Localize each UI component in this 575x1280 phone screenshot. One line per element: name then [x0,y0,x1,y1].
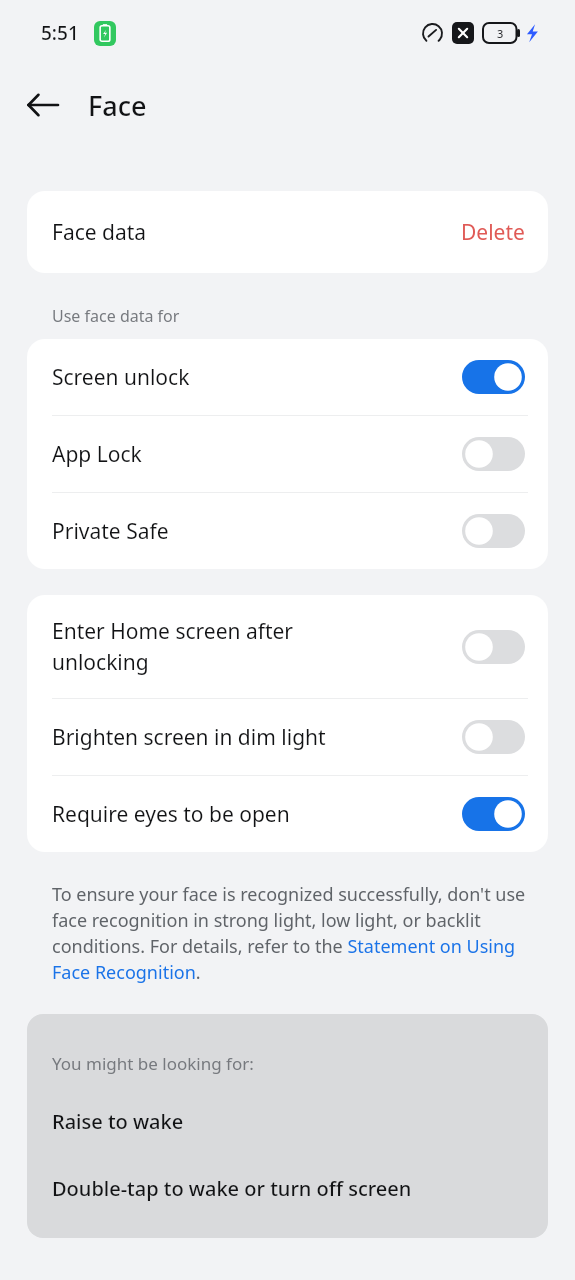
staticText: Screen unlock [52,363,450,392]
staticText: Require eyes to be open [52,800,450,829]
button[interactable]: Brighten screen in dim light [27,699,548,775]
staticText: To ensure your face is recognized succes… [52,882,535,985]
staticText: You might be looking for: [52,1052,254,1075]
staticText: Enter Home screen after unlocking [52,617,450,676]
button[interactable]: Enter Home screen after unlocking [27,595,548,698]
button[interactable]: Back [18,81,66,129]
button[interactable]: Face data [27,191,548,273]
button[interactable]: Private Safe [27,493,548,569]
staticText: App Lock [52,440,450,469]
staticText: Delete [461,218,525,247]
staticText: 5:51 [41,20,79,46]
button[interactable]: Screen unlock [27,339,548,415]
staticText: Face data [52,218,147,247]
button[interactable]: App Lock [27,416,548,492]
staticText: 3 [497,26,504,41]
staticText: Private Safe [52,517,450,546]
staticText: Brighten screen in dim light [52,723,450,752]
staticText: Face [88,87,147,124]
staticText: Use face data for [52,305,180,327]
button[interactable]: Require eyes to be open [27,776,548,852]
button[interactable]: Raise to wake [52,1108,528,1135]
button[interactable]: Double-tap to wake or turn off screen [52,1175,528,1202]
